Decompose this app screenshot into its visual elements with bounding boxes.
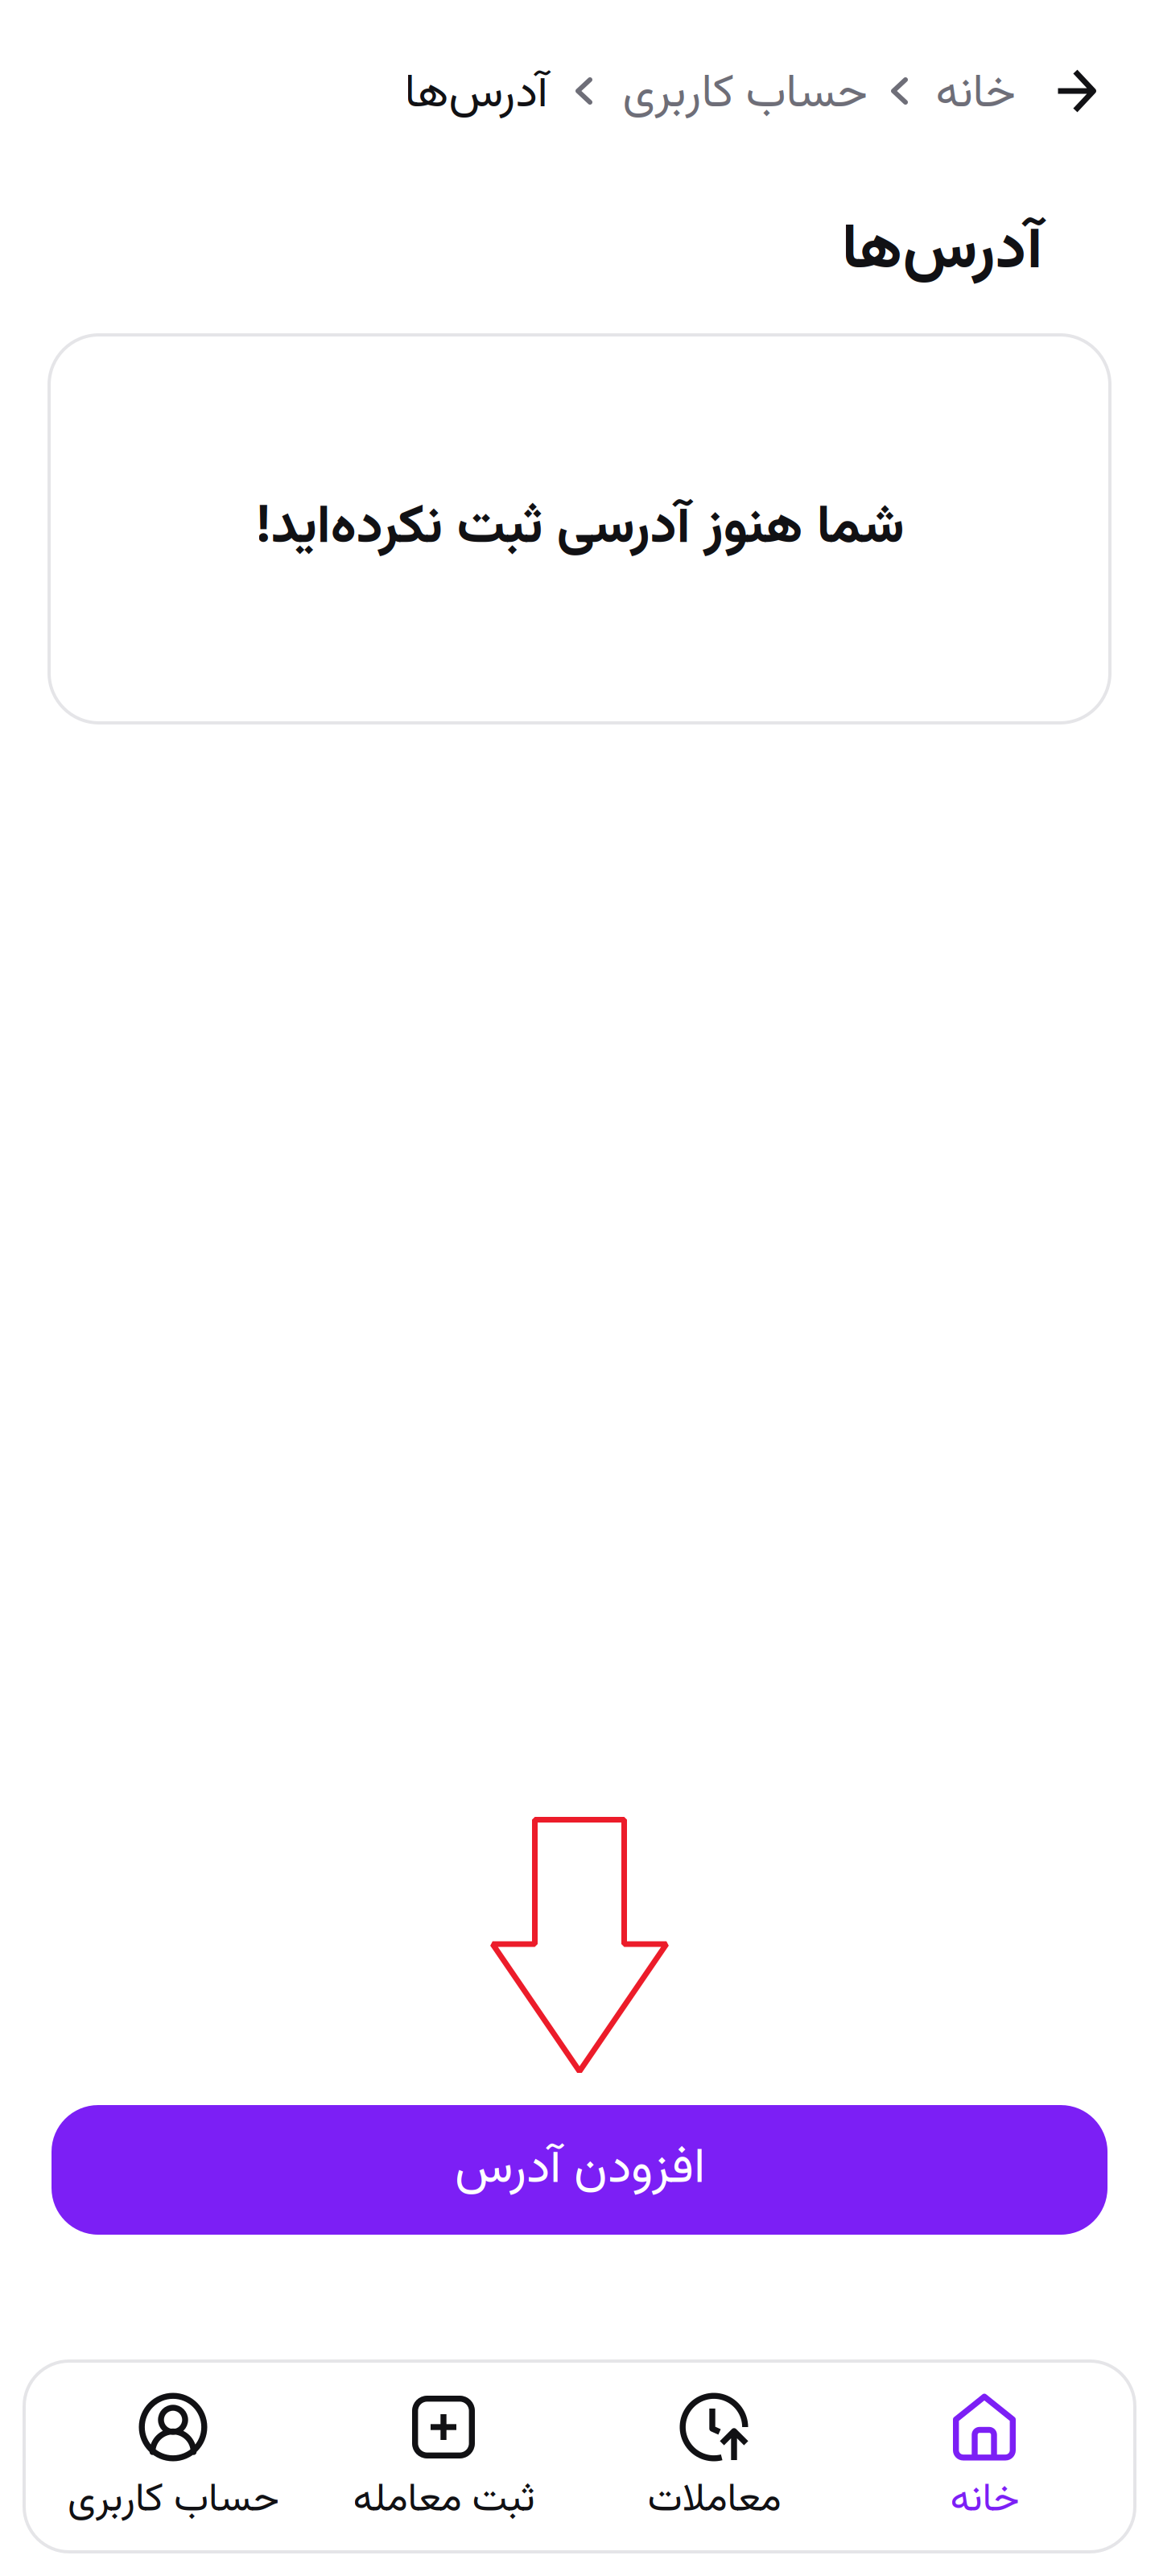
staticText: شما هنوز آدرسی ثبت نکرده‌اید! [255,487,904,571]
button[interactable]: حساب کاربری [38,2361,308,2552]
staticText: آدرس‌ها [841,203,1042,301]
button[interactable]: ثبت معامله [308,2361,579,2552]
staticText: خانه [950,2470,1019,2532]
staticText: حساب کاربری [67,2470,279,2532]
staticText: حساب کاربری [622,59,867,131]
button[interactable]: معاملات [579,2361,849,2552]
staticText: معاملات [647,2470,781,2532]
staticText: آدرس‌ها [404,59,547,131]
button[interactable]: خانه [849,2361,1120,2552]
button[interactable]: افزودن آدرس [52,2105,1107,2235]
button[interactable]: Back [1055,70,1096,120]
staticText: خانه [935,59,1015,131]
staticText: ثبت معامله [353,2470,534,2532]
staticText: افزودن آدرس [454,2131,705,2208]
